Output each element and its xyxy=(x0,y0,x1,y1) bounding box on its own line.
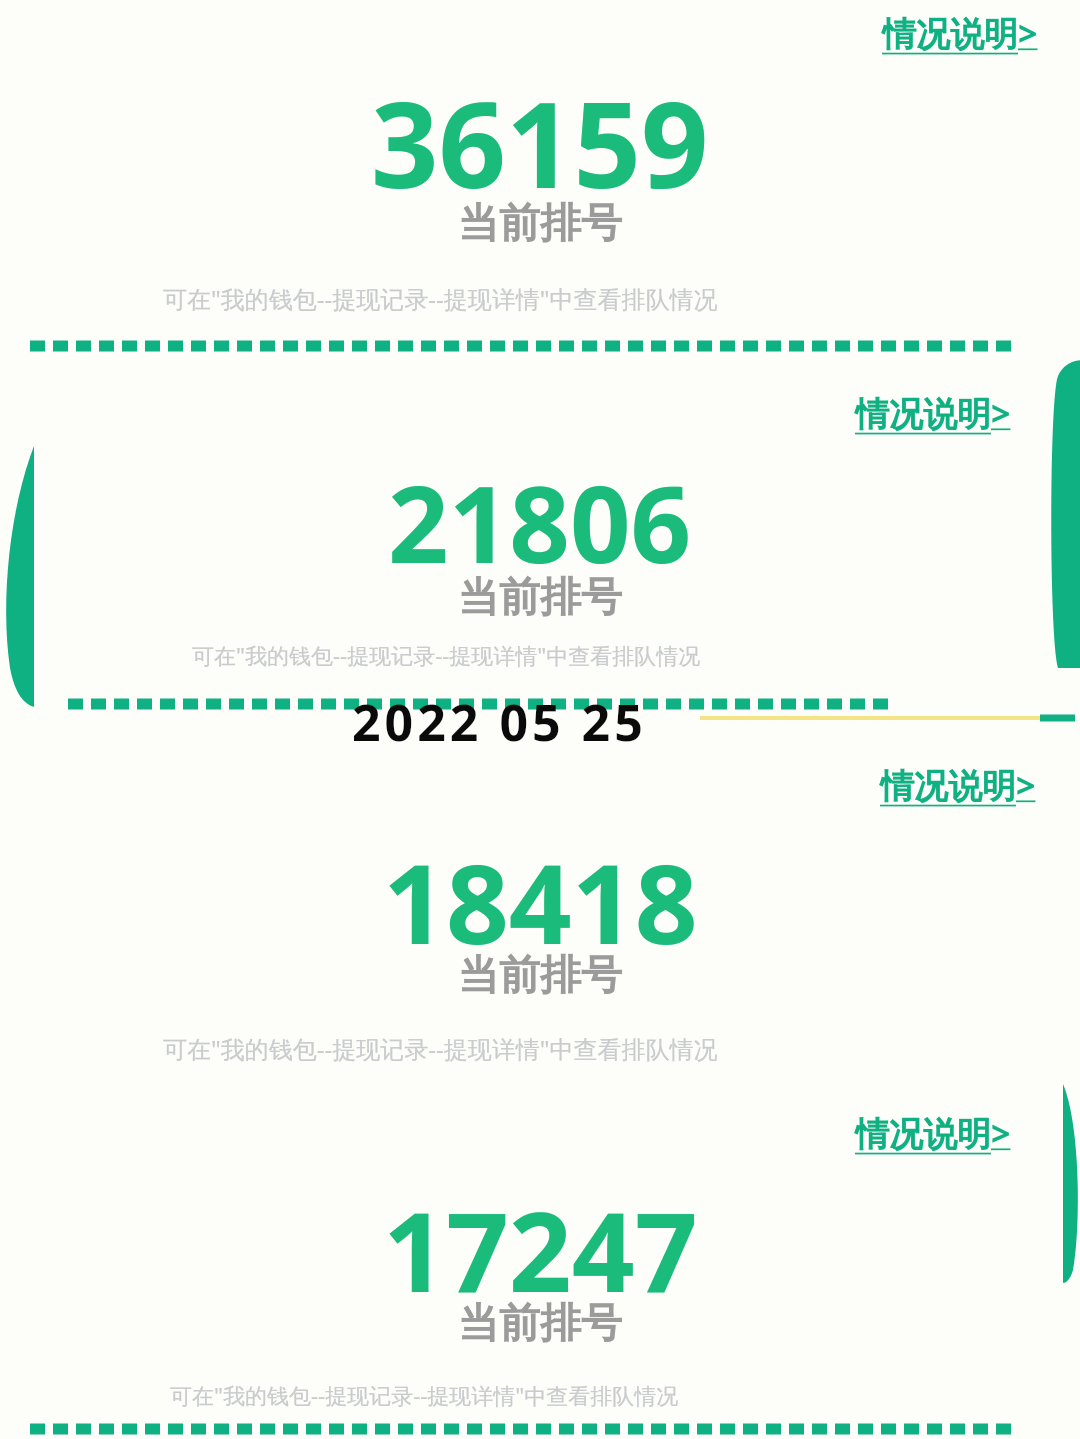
staticText: 可在"我的钱包--提现记录--提现详情"中查看排队情况 xyxy=(170,1380,679,1410)
staticText: 2022 05 25 xyxy=(352,688,647,756)
staticText: 21806 xyxy=(388,450,692,594)
staticText: 17247 xyxy=(383,1174,698,1324)
staticText: 情况说明> xyxy=(880,762,1036,808)
staticText: 当前排号 xyxy=(458,950,622,1002)
staticText: 36159 xyxy=(371,62,709,223)
staticText: 当前排号 xyxy=(458,1298,622,1350)
staticText: 18418 xyxy=(383,826,698,976)
button[interactable]: 情况说明 xyxy=(855,390,1011,436)
staticText: 情况说明> xyxy=(855,1110,1011,1156)
button[interactable]: 情况说明 xyxy=(855,1110,1011,1156)
staticText: 当前排号 xyxy=(458,198,622,250)
staticText: 情况说明> xyxy=(855,390,1011,436)
button[interactable]: 情况说明 xyxy=(880,762,1036,808)
staticText: 当前排号 xyxy=(458,572,622,624)
staticText: 可在"我的钱包--提现记录--提现详情"中查看排队情况 xyxy=(163,1032,718,1065)
staticText: 可在"我的钱包--提现记录--提现详情"中查看排队情况 xyxy=(163,282,718,315)
staticText: 情况说明> xyxy=(882,10,1038,56)
staticText: 可在"我的钱包--提现记录--提现详情"中查看排队情况 xyxy=(192,640,701,670)
button[interactable]: 情况说明 xyxy=(882,10,1038,56)
